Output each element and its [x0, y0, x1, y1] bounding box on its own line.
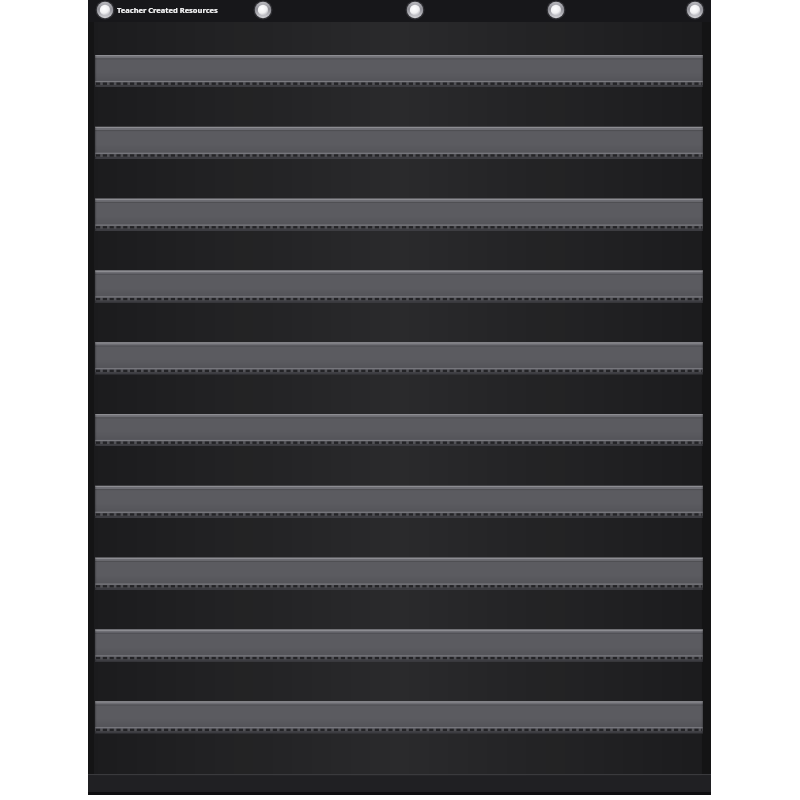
button[interactable]: Black pocket chart [0, 0, 800, 800]
